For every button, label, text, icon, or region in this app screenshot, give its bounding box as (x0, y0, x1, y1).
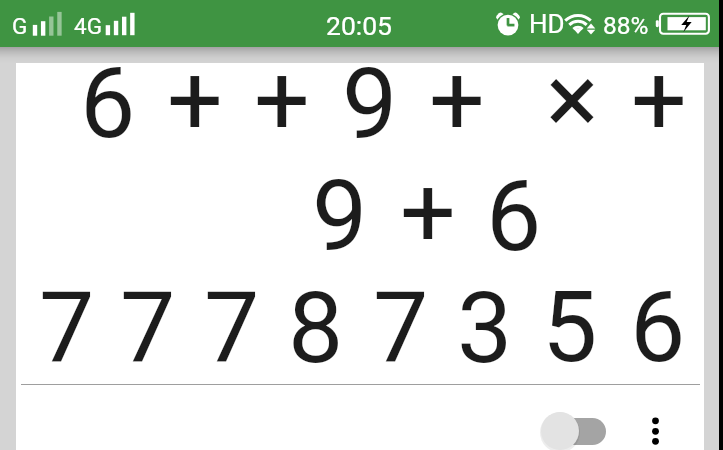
staticText: 6 (80, 46, 136, 161)
staticText: 20:05 (326, 10, 392, 41)
button[interactable]: More options (636, 405, 676, 450)
staticText: + (429, 43, 485, 158)
staticText: + (254, 43, 310, 158)
staticText: 9 (312, 159, 368, 274)
staticText: 3 (457, 271, 513, 386)
staticText: 7 (204, 271, 260, 386)
staticText: G (12, 13, 28, 39)
staticText: 8 (288, 271, 344, 386)
staticText: HD (529, 9, 565, 39)
staticText: 7 (39, 271, 95, 386)
staticText: 5 (542, 270, 598, 385)
staticText: 88% (603, 11, 649, 40)
staticText: 7 (373, 271, 429, 386)
staticText: + (631, 43, 687, 158)
staticText: 9 (342, 47, 398, 162)
staticText: 6 (486, 159, 542, 274)
staticText: + (400, 155, 456, 270)
staticText: × (546, 42, 599, 157)
staticText: 7 (120, 271, 176, 386)
staticText: 4G (74, 13, 102, 39)
staticText: 6 (630, 270, 686, 385)
button[interactable]: Toggle (540, 408, 616, 450)
staticText: + (167, 43, 223, 158)
